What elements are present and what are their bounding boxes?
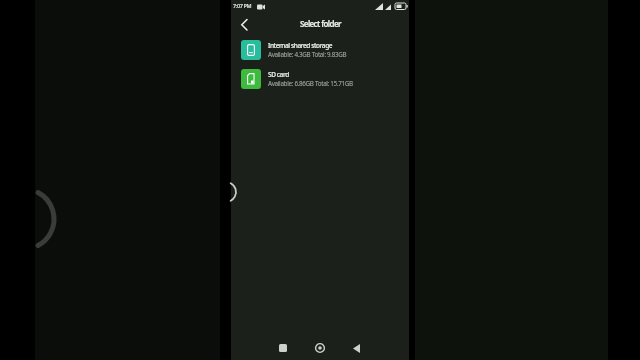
button[interactable]: SD card [231,66,409,93]
button[interactable] [235,16,253,34]
staticText: Available: 6.86GB Total: 15.71GB [268,79,353,88]
button[interactable] [274,340,291,356]
staticText: Available: 4.3GB Total: 9.83GB [268,50,347,59]
staticText: Internal shared storage [268,41,333,50]
button[interactable] [348,340,365,356]
staticText: Select folder [300,18,341,29]
button[interactable]: Internal shared storage [231,37,409,64]
staticText: 7:07 PM [233,2,252,9]
staticText: SD card [268,70,289,79]
button[interactable] [311,340,329,356]
